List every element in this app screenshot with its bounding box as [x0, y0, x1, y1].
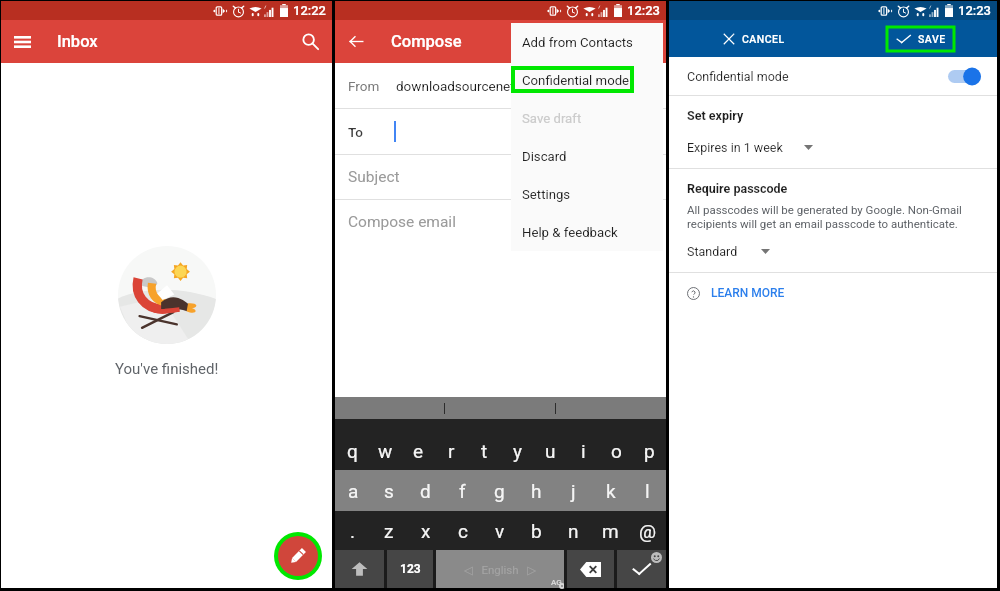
button[interactable]: n	[555, 511, 592, 550]
button[interactable]: o	[600, 432, 633, 470]
button[interactable]: i	[567, 432, 600, 470]
staticText: t	[481, 440, 488, 462]
staticText: o	[611, 440, 622, 462]
staticText: Compose	[391, 32, 462, 51]
staticText: b	[531, 520, 542, 542]
staticText: e	[413, 440, 424, 462]
staticText: 12:23	[958, 3, 991, 18]
staticText: downloadsourcenet@	[396, 78, 527, 94]
button[interactable]	[335, 550, 384, 588]
button[interactable]: y	[501, 432, 534, 470]
button[interactable]: c	[444, 511, 481, 550]
button[interactable]: r	[435, 432, 468, 470]
button[interactable]: Standard	[669, 242, 997, 260]
button[interactable]: s	[371, 470, 407, 511]
staticText: c	[458, 520, 468, 542]
button[interactable]: Help & feedback	[511, 213, 663, 251]
button[interactable]: u	[534, 432, 567, 470]
staticText: p	[644, 440, 655, 462]
staticText: u	[545, 440, 556, 462]
staticText: z	[384, 520, 394, 542]
staticText: @	[639, 520, 657, 542]
button[interactable]: @	[629, 511, 666, 550]
button[interactable]: p	[633, 432, 666, 470]
staticText: SAVE	[918, 33, 946, 45]
button[interactable]: ◁ English ▷	[436, 550, 564, 588]
staticText: q	[347, 440, 358, 462]
staticText: m	[602, 520, 619, 542]
staticText: y	[513, 440, 522, 462]
button[interactable]: b	[518, 511, 555, 550]
button[interactable]: Expires in 1 week	[669, 138, 997, 156]
button[interactable]: t	[468, 432, 501, 470]
button[interactable]: SAVE	[887, 27, 954, 51]
button[interactable]: k	[592, 470, 629, 511]
staticText: All passcodes will be generated by Googl…	[687, 203, 962, 216]
staticText: f	[459, 480, 466, 502]
button[interactable]: z	[371, 511, 407, 550]
staticText: n	[568, 520, 579, 542]
button[interactable]: Back	[335, 20, 378, 63]
button[interactable]: m	[592, 511, 629, 550]
button[interactable]	[617, 550, 666, 588]
button[interactable]: e	[402, 432, 435, 470]
staticText: x	[421, 520, 431, 542]
button[interactable]: Settings	[511, 175, 663, 213]
staticText: Compose email	[348, 213, 456, 231]
staticText: v	[495, 520, 505, 542]
button[interactable]	[567, 550, 614, 588]
staticText: i	[581, 440, 586, 462]
staticText: h	[531, 480, 542, 502]
staticText: Help & feedback	[522, 225, 618, 240]
button[interactable]: h	[518, 470, 555, 511]
staticText: Subject	[348, 168, 400, 186]
staticText: Expires in 1 week	[687, 140, 783, 155]
button[interactable]: a	[335, 470, 371, 511]
staticText: recipients will get an email passcode to…	[687, 217, 958, 230]
button[interactable]: v	[481, 511, 518, 550]
staticText: Set expiry	[687, 108, 744, 123]
staticText: l	[645, 480, 650, 502]
staticText: Confidential mode	[687, 69, 789, 84]
button[interactable]: w	[369, 432, 402, 470]
staticText: Confidential mode	[522, 73, 630, 88]
button[interactable]: x	[407, 511, 444, 550]
staticText: To	[348, 124, 363, 140]
staticText: 12:22	[293, 3, 326, 18]
staticText: CANCEL	[742, 33, 785, 45]
button[interactable]: LEARN MORE	[669, 283, 997, 303]
button[interactable]: Discard	[511, 137, 663, 175]
button[interactable]: g	[481, 470, 518, 511]
button[interactable]: Save draft	[511, 99, 663, 137]
button[interactable]: q	[335, 432, 369, 470]
staticText: .	[350, 520, 356, 542]
button[interactable]: j	[555, 470, 592, 511]
button[interactable]: Search	[289, 20, 332, 63]
staticText: Settings	[522, 187, 571, 202]
staticText: 123	[400, 562, 421, 576]
button[interactable]: Open navigation drawer	[1, 20, 44, 63]
staticText: Require passcode	[687, 181, 788, 196]
button[interactable]: 123	[387, 550, 433, 588]
button[interactable]: .	[335, 511, 371, 550]
staticText: Save draft	[522, 111, 582, 126]
staticText: w	[378, 440, 393, 462]
staticText: Discard	[522, 149, 567, 164]
button[interactable]: Add from Contacts	[511, 23, 663, 61]
staticText: AG	[551, 578, 562, 587]
staticText: g	[494, 480, 505, 502]
button[interactable]: l	[629, 470, 666, 511]
staticText: ◁ English ▷	[464, 563, 537, 576]
staticText: j	[571, 480, 576, 502]
staticText: 12:23	[627, 3, 660, 18]
button[interactable]: CANCEL	[669, 24, 795, 54]
staticText: r	[448, 440, 455, 462]
button[interactable]: f	[444, 470, 481, 511]
staticText: You've finished!	[115, 360, 219, 378]
staticText: k	[606, 480, 616, 502]
button[interactable]: Confidential mode	[669, 57, 997, 95]
button[interactable]: Compose	[274, 532, 322, 580]
staticText: Add from Contacts	[522, 35, 633, 50]
button[interactable]: d	[407, 470, 444, 511]
button[interactable]: Confidential mode	[511, 61, 663, 99]
